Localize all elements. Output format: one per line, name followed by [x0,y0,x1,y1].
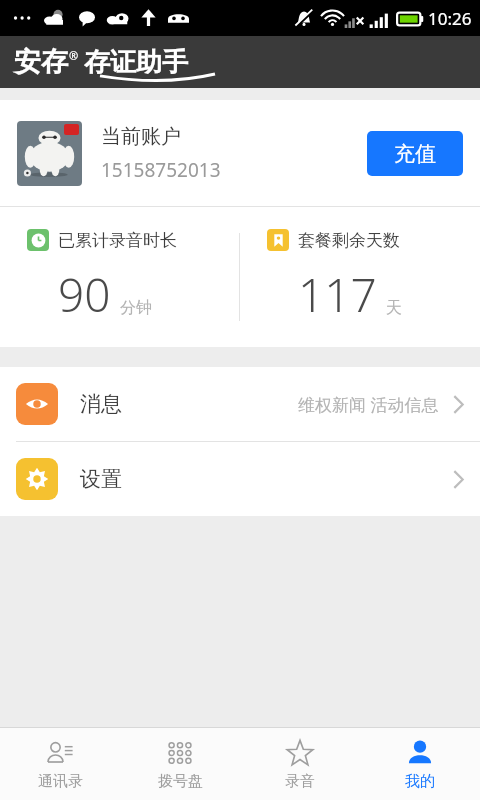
button[interactable]: 录音 [240,728,360,800]
staticText: 已累计录音时长 [58,230,177,251]
staticText: 拨号盘 [158,772,203,791]
staticText: 消息 [80,391,122,417]
button[interactable]: 套餐剩余天数 [240,207,480,347]
staticText: 天 [386,298,402,318]
staticText: 维权新闻 活动信息 [298,393,439,416]
staticText: 分钟 [120,298,152,318]
button[interactable]: 消息 [0,367,480,441]
button[interactable]: 已累计录音时长 [0,207,239,347]
staticText: 录音 [285,772,315,791]
staticText: 通讯录 [38,772,83,791]
staticText: 充值 [394,141,436,167]
staticText: 我的 [405,772,435,791]
button[interactable]: 拨号盘 [120,728,240,800]
staticText: 设置 [80,466,122,492]
staticText: 安存 [14,45,68,79]
button[interactable]: 设置 [0,442,480,516]
staticText: 10:26 [428,7,472,30]
staticText: 15158752013 [101,157,221,183]
button[interactable]: 当前账户 [0,100,480,206]
button[interactable]: 通讯录 [0,728,120,800]
staticText: 当前账户 [101,124,181,149]
staticText: 套餐剩余天数 [298,230,400,251]
staticText: 90 [58,263,111,326]
button[interactable]: 我的 [360,728,480,800]
staticText: 存证助手 [84,46,188,79]
button[interactable]: 充值 [367,131,463,176]
staticText: 117 [298,263,377,326]
staticText: ® [69,48,79,63]
